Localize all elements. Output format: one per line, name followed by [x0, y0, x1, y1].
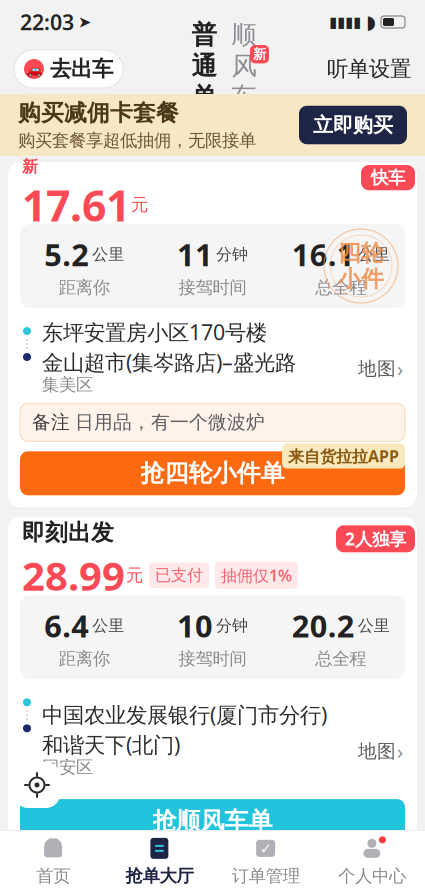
staticText: ➤: [78, 13, 91, 31]
staticText: 集美区: [42, 374, 93, 395]
button[interactable]: 🚗: [14, 50, 123, 88]
staticText: 地图: [358, 740, 396, 763]
staticText: 顺风车: [231, 19, 256, 113]
button[interactable]: 顺风车: [229, 19, 259, 119]
button[interactable]: 地图: [358, 738, 403, 764]
staticText: 17.61: [22, 176, 130, 233]
staticText: 接驾时间: [178, 277, 246, 298]
staticText: 个人中心: [338, 865, 406, 887]
button[interactable]: 立即购买: [299, 106, 407, 144]
staticText: 公里: [358, 616, 390, 635]
staticText: 抢四轮小件单: [140, 459, 284, 488]
button[interactable]: 个人中心: [319, 830, 425, 892]
staticText: 🚗: [25, 61, 42, 77]
staticText: 新: [22, 157, 38, 176]
staticText: 新: [253, 46, 266, 62]
staticText: 快车: [371, 167, 405, 188]
staticText: 购买减佣卡套餐: [18, 99, 179, 127]
staticText: 总全程: [315, 277, 366, 298]
staticText: 订单管理: [232, 865, 300, 887]
staticText: 总全程: [315, 648, 366, 669]
staticText: 抢顺风车单: [152, 806, 272, 836]
staticText: 已支付: [155, 565, 203, 585]
staticText: 11: [177, 234, 213, 275]
staticText: ◗: [366, 11, 376, 33]
staticText: ✓: [260, 840, 272, 857]
staticText: 即刻出发: [22, 519, 114, 547]
staticText: ▮▮▮▮: [329, 14, 361, 30]
staticText: 22:03: [20, 8, 74, 36]
staticText: 立即购买: [313, 113, 393, 137]
staticText: 抢单大厅: [125, 865, 193, 887]
staticText: 元: [131, 194, 148, 215]
staticText: 同安区: [42, 757, 93, 778]
staticText: 5.2: [44, 234, 89, 275]
staticText: 听单设置: [327, 56, 411, 82]
staticText: 公里: [92, 616, 124, 635]
button[interactable]: 普通单: [191, 19, 217, 119]
button[interactable]: 听单设置: [327, 56, 411, 82]
staticText: 分钟: [216, 616, 248, 635]
staticText: 四轮: [338, 239, 384, 267]
staticText: 地图: [358, 357, 396, 380]
staticText: 首页: [36, 865, 70, 887]
staticText: 备注: [32, 411, 70, 434]
staticText: 2人独享: [345, 527, 406, 550]
staticText: ›: [397, 355, 403, 382]
button[interactable]: 抢顺风车单: [20, 799, 405, 843]
button[interactable]: ✓: [212, 830, 319, 892]
staticText: 16.1: [292, 234, 355, 275]
staticText: 去出车: [50, 56, 113, 82]
staticText: 和谐天下(北门): [42, 730, 180, 759]
staticText: 28.99: [22, 549, 125, 602]
staticText: 元: [126, 565, 143, 586]
staticText: 距离你: [59, 277, 110, 298]
staticText: 抽佣仅1%: [221, 565, 292, 586]
staticText: 普通单: [191, 19, 216, 113]
staticText: 日用品，有一个微波炉: [75, 411, 265, 434]
button[interactable]: 首页: [0, 830, 106, 892]
staticText: 6.4: [44, 605, 89, 646]
staticText: 20.2: [292, 605, 355, 646]
staticText: 金山超市(集岑路店)–盛光路: [42, 348, 296, 376]
button[interactable]: 地图: [358, 355, 403, 382]
button[interactable]: 抢单大厅: [106, 830, 212, 892]
staticText: 小件: [338, 265, 384, 293]
button[interactable]: 抢四轮小件单: [20, 451, 405, 495]
staticText: 距离你: [59, 648, 110, 669]
staticText: 接驾时间: [178, 648, 246, 669]
staticText: ›: [397, 738, 403, 764]
staticText: 分钟: [216, 244, 248, 264]
staticText: 来自货拉拉APP: [288, 445, 399, 466]
staticText: 10: [177, 605, 213, 646]
staticText: 中国农业发展银行(厦门市分行): [42, 700, 327, 729]
staticText: 公里: [92, 244, 124, 264]
staticText: 购买套餐享超低抽佣，无限接单: [18, 130, 256, 151]
button[interactable]: Locate me: [14, 762, 60, 808]
staticText: 东坪安置房小区170号楼: [42, 318, 267, 346]
staticText: 公里: [358, 244, 390, 264]
